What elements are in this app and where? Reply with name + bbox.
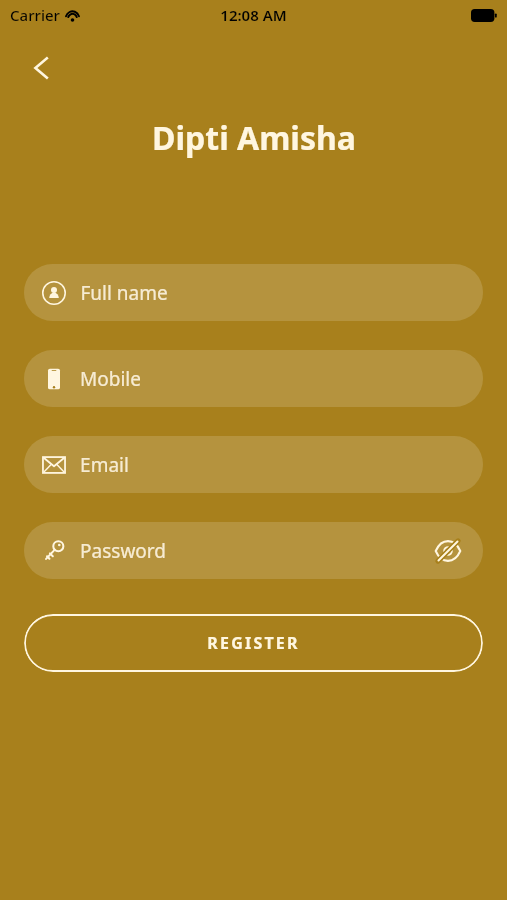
button[interactable]: Password: [24, 522, 483, 579]
staticText: REGISTER: [207, 632, 300, 654]
button[interactable]: Full name: [24, 264, 483, 321]
button[interactable]: Email: [24, 436, 483, 493]
staticText: Password: [80, 538, 166, 564]
button[interactable]: Back: [18, 44, 66, 92]
button[interactable]: Mobile: [24, 350, 483, 407]
staticText: Dipti Amisha: [152, 116, 356, 160]
staticText: Carrier: [10, 5, 60, 25]
staticText: 12:08 AM: [220, 5, 287, 25]
staticText: Email: [80, 452, 129, 478]
button[interactable]: Toggle password visibility: [431, 534, 465, 568]
button[interactable]: REGISTER: [24, 614, 483, 672]
staticText: Mobile: [80, 366, 141, 392]
staticText: Full name: [80, 280, 168, 306]
